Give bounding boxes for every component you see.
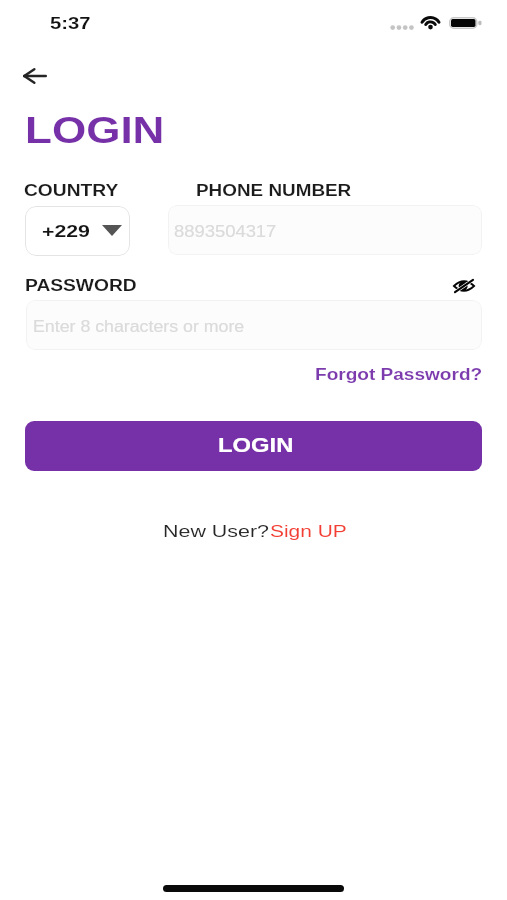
staticText: 5:37: [50, 14, 92, 33]
staticText: LOGIN: [25, 110, 165, 151]
button[interactable]: LOGIN: [25, 421, 482, 471]
staticText: LOGIN: [218, 434, 294, 456]
staticText: COUNTRY: [24, 182, 119, 200]
staticText: Forgot Password?: [315, 366, 483, 384]
button[interactable]: Show password: [447, 269, 481, 303]
staticText: PHONE NUMBER: [196, 182, 352, 200]
staticText: Sign UP: [270, 522, 347, 541]
button[interactable]: Sign UP: [270, 518, 333, 545]
staticText: New User?: [163, 522, 270, 541]
staticText: 8893504317: [174, 223, 276, 241]
staticText: Enter 8 characters or more: [33, 318, 245, 336]
button[interactable]: Forgot Password?: [307, 360, 464, 390]
staticText: PASSWORD: [25, 277, 138, 295]
button[interactable]: Select country code, +229: [25, 206, 130, 256]
button[interactable]: Enter 8 characters or more: [26, 300, 482, 350]
button[interactable]: Back: [13, 54, 57, 98]
staticText: +229: [42, 223, 91, 241]
button[interactable]: 8893504317: [168, 205, 482, 255]
